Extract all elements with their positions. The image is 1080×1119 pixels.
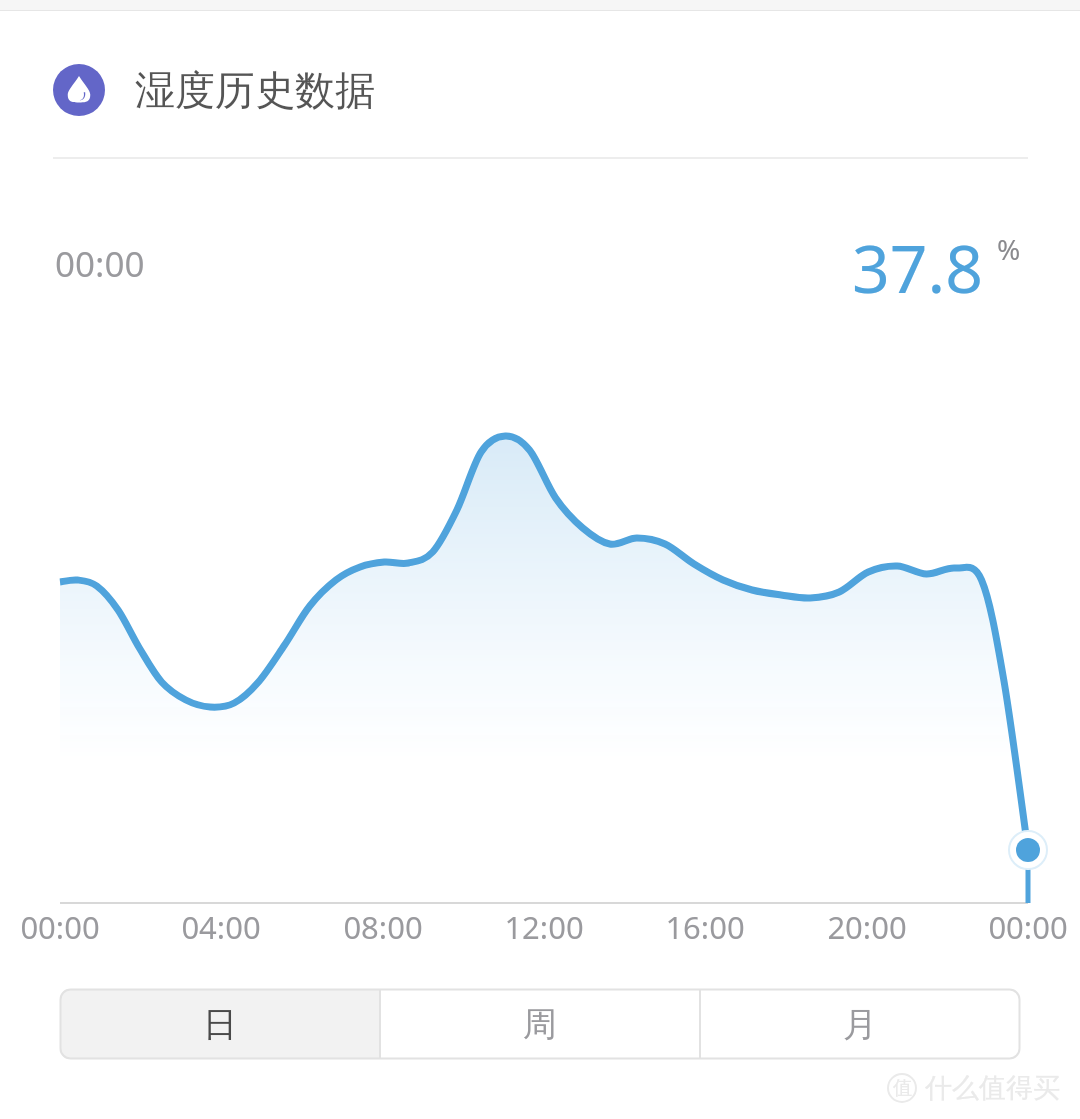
button[interactable]: 周 [380,989,700,1059]
staticText: 12:00 [474,906,614,948]
staticText: 00:00 [55,240,145,288]
staticText: 20:00 [797,906,937,948]
staticText: 04:00 [151,906,291,948]
staticText: 37.8 [852,222,983,312]
staticText: 什么值得买 [925,1071,1060,1105]
button[interactable]: 月 [700,989,1020,1059]
staticText: 日 [203,1003,237,1046]
staticText: 16:00 [635,906,775,948]
staticText: 00:00 [958,906,1080,948]
staticText: 湿度历史数据 [135,65,375,115]
button[interactable]: 日 [60,989,380,1059]
other: Humidity [53,64,105,116]
staticText: 周 [523,1003,557,1046]
staticText: 值 [893,1076,912,1100]
staticText: 00:00 [0,906,130,948]
staticText: 08:00 [313,906,453,948]
staticText: 月 [843,1003,877,1046]
staticText: % [997,230,1021,268]
